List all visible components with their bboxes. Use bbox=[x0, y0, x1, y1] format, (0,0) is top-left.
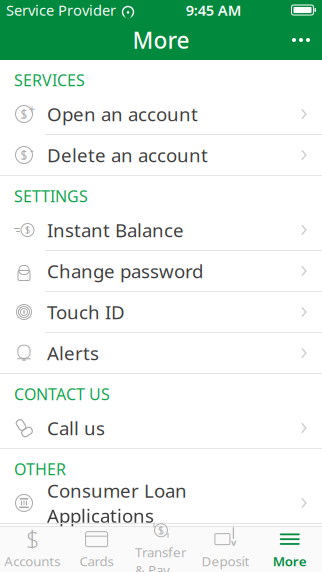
staticText: More bbox=[273, 552, 307, 570]
staticText: S bbox=[26, 524, 38, 554]
button[interactable]: Change password bbox=[0, 251, 322, 291]
staticText: Deposit bbox=[201, 552, 249, 570]
staticText: SETTINGS bbox=[14, 185, 88, 207]
staticText: OTHER bbox=[14, 458, 66, 480]
staticText: S bbox=[158, 523, 164, 537]
button[interactable]: Touch ID bbox=[0, 292, 322, 332]
button[interactable]: v bbox=[193, 527, 258, 571]
button[interactable]: S bbox=[129, 527, 193, 571]
staticText: Consumer Loan Applications bbox=[47, 478, 187, 528]
staticText: Transfer & Pay bbox=[135, 543, 187, 572]
staticText: SERVICES bbox=[14, 69, 85, 91]
staticText: Change password bbox=[47, 259, 203, 283]
button[interactable]: S bbox=[0, 94, 322, 134]
staticText: Cards bbox=[80, 552, 114, 570]
staticText: S bbox=[20, 106, 27, 122]
staticText: Instant Balance bbox=[47, 218, 184, 242]
button[interactable]: More bbox=[258, 527, 322, 571]
button[interactable]: Alerts bbox=[0, 333, 322, 373]
staticText: Service Provider bbox=[6, 0, 116, 20]
staticText: Delete an account bbox=[47, 143, 208, 167]
staticText: Touch ID bbox=[47, 300, 125, 324]
staticText: S bbox=[25, 224, 30, 236]
staticText: + bbox=[28, 101, 35, 117]
staticText: Alerts bbox=[47, 341, 99, 365]
staticText: 9:45 AM bbox=[186, 0, 242, 20]
staticText: More bbox=[132, 25, 189, 55]
button[interactable]: More options bbox=[280, 20, 322, 60]
staticText: - bbox=[30, 142, 34, 158]
staticText: Open an account bbox=[47, 102, 198, 126]
staticText: Accounts bbox=[4, 552, 60, 570]
button[interactable]: Call us bbox=[0, 408, 322, 448]
button[interactable]: S bbox=[0, 527, 64, 571]
button[interactable]: S bbox=[0, 210, 322, 250]
button[interactable]: Cards bbox=[64, 527, 129, 571]
staticText: v bbox=[231, 536, 236, 548]
staticText: Call us bbox=[47, 416, 105, 440]
staticText: S bbox=[20, 147, 27, 163]
staticText: CONTACT US bbox=[14, 383, 110, 405]
button[interactable]: Consumer Loan Applications bbox=[0, 483, 322, 523]
button[interactable]: S bbox=[0, 135, 322, 175]
